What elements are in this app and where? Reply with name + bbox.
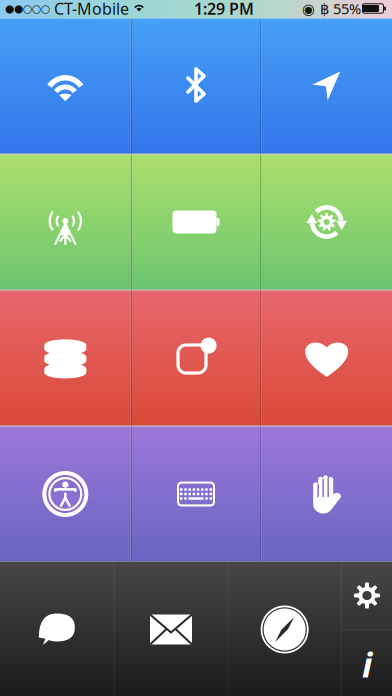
staticText: 1:29 PM [194,0,254,19]
button[interactable]: Safari [228,561,341,696]
button[interactable]: Settings [342,561,392,629]
button[interactable]: Mail [115,561,227,696]
staticText: ●●○○○ [5,2,50,14]
button[interactable]: Notifications [131,290,261,425]
button[interactable]: Cellular [0,154,131,289]
button[interactable]: Keyboard [131,426,261,561]
button[interactable]: Wi-Fi [0,18,131,153]
staticText: CT-Mobile [50,0,133,19]
button[interactable]: Accessibility [0,426,131,561]
button[interactable]: Location [261,18,392,153]
button[interactable]: Storage [0,290,131,425]
button[interactable]: Guided access [261,426,392,561]
button[interactable]: Health [261,290,392,425]
button[interactable]: Bluetooth [131,18,261,153]
button[interactable]: Background refresh [261,154,392,289]
staticText: ◉ ฿ 55% [302,0,361,18]
button[interactable]: Messages [0,561,114,696]
button[interactable]: Battery [131,154,261,289]
staticText: i [362,641,372,687]
button[interactable]: About [342,630,392,696]
